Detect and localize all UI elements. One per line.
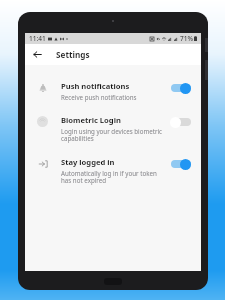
staticText: 71% — [180, 34, 193, 43]
button[interactable]: Push notifications — [25, 74, 201, 108]
staticText: Login using your devices biometric capab… — [61, 127, 164, 143]
staticText: Push notifications — [61, 81, 130, 91]
button[interactable]: Back — [31, 48, 44, 61]
button[interactable]: Toggle on — [170, 82, 192, 94]
button[interactable]: Toggle on — [170, 158, 192, 170]
button[interactable]: Biometric Login — [25, 108, 201, 150]
staticText: 11:41 — [29, 34, 46, 43]
staticText: Receive push notifications — [61, 93, 137, 101]
button[interactable]: Stay logged in — [25, 150, 201, 192]
button[interactable]: Toggle off — [170, 116, 192, 128]
staticText: Biometric Login — [61, 115, 121, 125]
staticText: Settings — [56, 49, 90, 60]
staticText: Automatically log in if your token has n… — [61, 169, 164, 185]
staticText: Stay logged in — [61, 157, 115, 167]
